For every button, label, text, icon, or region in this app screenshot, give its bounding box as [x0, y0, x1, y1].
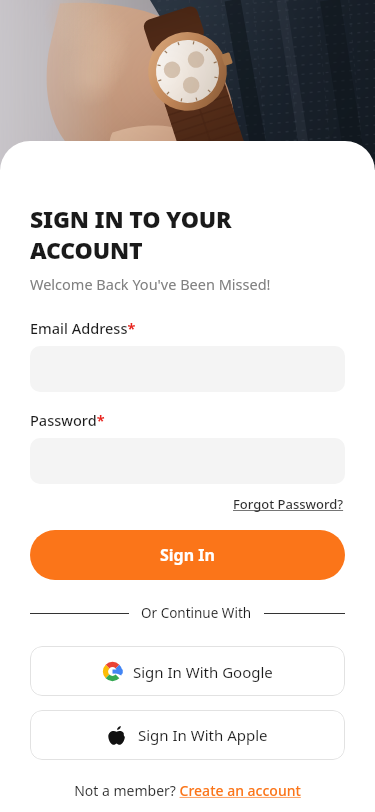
staticText: Email Address* — [30, 318, 136, 338]
staticText: Password* — [30, 410, 105, 430]
staticText: Sign In With Apple — [138, 725, 268, 745]
button[interactable]: Sign In With Apple — [30, 710, 345, 760]
button[interactable]: Sign In With Google — [30, 646, 345, 696]
staticText: SIGN IN TO YOUR ACCOUNT — [30, 203, 345, 265]
button[interactable]: Forgot Password? — [232, 493, 345, 515]
button[interactable]: Sign In — [30, 530, 345, 580]
button[interactable]: Not a member? Create an account — [72, 779, 303, 802]
staticText: Forgot Password? — [233, 495, 344, 513]
staticText: Welcome Back You've Been Missed! — [30, 274, 271, 294]
staticText: Sign In With Google — [133, 662, 273, 682]
staticText: Sign In — [160, 544, 215, 566]
staticText: Not a member? Create an account — [74, 781, 301, 800]
staticText: Or Continue With — [141, 604, 252, 622]
